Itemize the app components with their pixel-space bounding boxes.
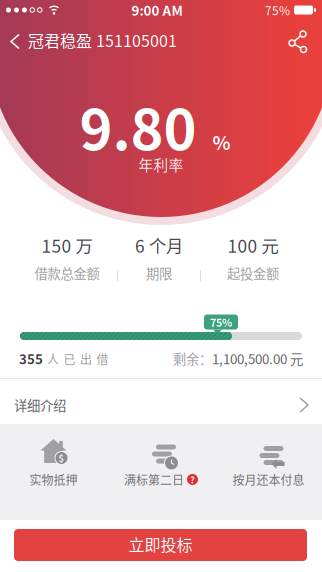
staticText: 立即投标 — [128, 533, 192, 555]
button[interactable]: Back — [0, 31, 28, 48]
staticText: 355 — [19, 349, 43, 368]
button[interactable]: 立即投标 — [14, 529, 307, 561]
staticText: 150 万 — [41, 233, 92, 257]
staticText: 冠君稳盈 151105001 — [28, 29, 177, 51]
staticText: 满标第二日 — [124, 471, 184, 488]
staticText: 起投金额 — [227, 263, 279, 282]
staticText: 9.80 — [79, 86, 196, 165]
staticText: 6 个月 — [135, 233, 183, 257]
staticText: 75% — [265, 1, 290, 18]
button[interactable]: 满标第二日说明 — [187, 474, 198, 485]
staticText: 已 — [63, 350, 75, 367]
staticText: 出 — [80, 350, 92, 367]
staticText: 9:00 AM — [131, 1, 182, 19]
staticText: 75% — [210, 314, 232, 330]
staticText: $ — [58, 451, 64, 465]
staticText: 期限 — [146, 263, 172, 282]
button[interactable]: Share — [289, 29, 322, 51]
staticText: 实物抵押 — [29, 471, 77, 488]
button[interactable]: 详细介绍 — [0, 379, 322, 424]
staticText: 年利率 — [138, 154, 183, 175]
staticText: 详细介绍 — [14, 396, 66, 414]
staticText: 1,100,500.00 元 — [212, 349, 303, 368]
staticText: 借 — [96, 350, 108, 367]
staticText: ? — [190, 473, 195, 486]
staticText: % — [212, 129, 230, 155]
staticText: 100 元 — [227, 233, 278, 257]
staticText: 按月还本付息 — [232, 471, 304, 488]
staticText: 剩余： — [173, 349, 212, 368]
staticText: 人 — [47, 350, 59, 367]
staticText: 借款总金额 — [34, 263, 99, 282]
